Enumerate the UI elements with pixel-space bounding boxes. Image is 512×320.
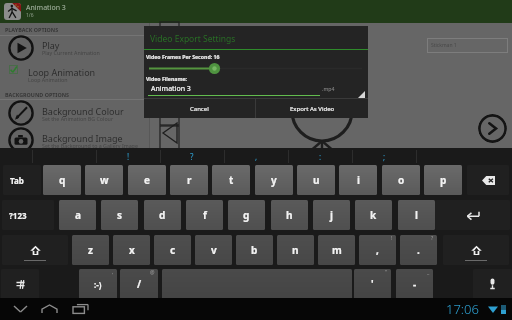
staticText: Tab bbox=[10, 175, 24, 186]
staticText: s bbox=[117, 208, 123, 222]
staticText: ! bbox=[391, 235, 393, 242]
staticText: Play bbox=[42, 39, 60, 51]
button[interactable]: :-) bbox=[79, 269, 117, 299]
button[interactable]: Stickman 1 bbox=[427, 38, 508, 53]
staticText: n bbox=[292, 243, 299, 257]
staticText: ? bbox=[431, 235, 434, 242]
staticText: / bbox=[137, 277, 142, 291]
button[interactable]: f bbox=[186, 200, 223, 230]
button[interactable]: Backspace bbox=[467, 165, 509, 195]
button[interactable]: d bbox=[144, 200, 181, 230]
button[interactable]: Space bbox=[162, 269, 352, 299]
staticText: r bbox=[187, 173, 192, 187]
button[interactable]: j bbox=[313, 200, 350, 230]
button[interactable]: , bbox=[224, 148, 288, 165]
staticText: u bbox=[313, 173, 320, 187]
button[interactable]: Keyboard settings bbox=[1, 269, 39, 299]
button[interactable]: ? bbox=[160, 148, 224, 165]
staticText: q bbox=[59, 173, 66, 187]
button[interactable]: Enter bbox=[435, 200, 510, 230]
button[interactable]: x bbox=[113, 235, 150, 265]
staticText: y bbox=[271, 173, 277, 187]
button[interactable]: ?123 bbox=[2, 200, 54, 230]
button[interactable]: p bbox=[424, 165, 462, 195]
staticText: m bbox=[332, 243, 342, 257]
staticText: " bbox=[385, 269, 388, 276]
button[interactable]: h bbox=[271, 200, 308, 230]
staticText: w bbox=[100, 173, 109, 187]
button[interactable]: Background Colour bbox=[0, 101, 150, 127]
staticText: ? bbox=[190, 151, 194, 162]
staticText: p bbox=[440, 173, 447, 187]
staticText: Animation 3 bbox=[26, 3, 66, 13]
staticText: @ bbox=[150, 269, 155, 276]
button[interactable]: Recent apps bbox=[68, 298, 92, 320]
button[interactable]: Cancel bbox=[144, 99, 255, 118]
button[interactable]: b bbox=[236, 235, 273, 265]
staticText: BACKGROUND OPTIONS bbox=[5, 91, 70, 98]
button[interactable]: k bbox=[355, 200, 392, 230]
button[interactable]: Next frame bbox=[478, 114, 507, 143]
button[interactable]: e bbox=[128, 165, 166, 195]
staticText: i bbox=[357, 173, 360, 187]
staticText: :-) bbox=[94, 279, 102, 290]
button[interactable]: w bbox=[85, 165, 123, 195]
button[interactable]: Shift bbox=[443, 235, 509, 265]
button[interactable]: Loop Animation bbox=[0, 62, 150, 88]
staticText: Background Image bbox=[42, 132, 123, 144]
button[interactable]: Tab bbox=[3, 165, 41, 195]
staticText: 1/6 bbox=[26, 12, 34, 19]
staticText: l bbox=[415, 208, 418, 222]
staticText: PLAYBACK OPTIONS bbox=[5, 26, 59, 33]
button[interactable]: n bbox=[277, 235, 314, 265]
button[interactable]: Back bbox=[8, 298, 32, 320]
button[interactable]: ! bbox=[96, 148, 160, 165]
staticText: , bbox=[112, 269, 114, 276]
button[interactable]: ' bbox=[354, 269, 391, 299]
button[interactable]: q bbox=[43, 165, 81, 195]
button[interactable]: Home bbox=[37, 298, 61, 320]
button[interactable]: o bbox=[382, 165, 420, 195]
staticText: Video Export Settings bbox=[150, 33, 236, 45]
staticText: Export As Video bbox=[290, 105, 335, 113]
staticText: x bbox=[129, 243, 135, 257]
button[interactable]: / bbox=[120, 269, 158, 299]
staticText: - bbox=[413, 277, 417, 291]
button[interactable]: Shift bbox=[2, 235, 68, 265]
button[interactable]: : bbox=[288, 148, 352, 165]
staticText: f bbox=[203, 208, 207, 222]
button[interactable]: a bbox=[59, 200, 96, 230]
button[interactable]: Voice input bbox=[473, 269, 512, 299]
button[interactable]: Play bbox=[0, 35, 150, 61]
button[interactable]: z bbox=[72, 235, 109, 265]
staticText: Background Colour bbox=[42, 105, 124, 117]
staticText: t bbox=[229, 173, 234, 187]
staticText: Set the Background to a Gallery Image bbox=[42, 142, 138, 149]
staticText: Set the Animation BG Colour bbox=[42, 115, 114, 122]
staticText: k bbox=[370, 208, 377, 222]
button[interactable]: c bbox=[154, 235, 191, 265]
button[interactable]: r bbox=[170, 165, 208, 195]
button[interactable]: g bbox=[228, 200, 265, 230]
button[interactable]: m bbox=[318, 235, 355, 265]
button[interactable]: y bbox=[255, 165, 293, 195]
staticText: c bbox=[170, 243, 176, 257]
button[interactable]: s bbox=[101, 200, 138, 230]
staticText: , bbox=[255, 151, 258, 162]
staticText: ' bbox=[371, 277, 374, 291]
button[interactable]: Export As Video bbox=[256, 99, 368, 118]
button[interactable]: i bbox=[339, 165, 377, 195]
staticText: o bbox=[398, 173, 405, 187]
button[interactable]: . bbox=[400, 235, 437, 265]
staticText: .mp4 bbox=[322, 85, 335, 92]
button[interactable]: , bbox=[359, 235, 396, 265]
button[interactable]: l bbox=[398, 200, 435, 230]
staticText: , bbox=[376, 243, 379, 257]
staticText: v bbox=[211, 243, 217, 257]
button[interactable]: v bbox=[195, 235, 232, 265]
button[interactable]: t bbox=[212, 165, 250, 195]
button[interactable]: ; bbox=[352, 148, 416, 165]
button[interactable]: - bbox=[396, 269, 433, 299]
button[interactable]: u bbox=[297, 165, 335, 195]
button[interactable]: Background Image bbox=[0, 128, 150, 154]
